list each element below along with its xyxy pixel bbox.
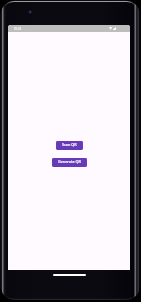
staticText: Generate QR bbox=[58, 159, 81, 164]
other: Home bbox=[53, 274, 86, 276]
staticText: 10:34 bbox=[14, 27, 22, 31]
button[interactable]: Scan QR bbox=[56, 141, 83, 150]
button[interactable]: Generate QR bbox=[52, 158, 87, 167]
staticText: Scan QR bbox=[62, 142, 77, 147]
